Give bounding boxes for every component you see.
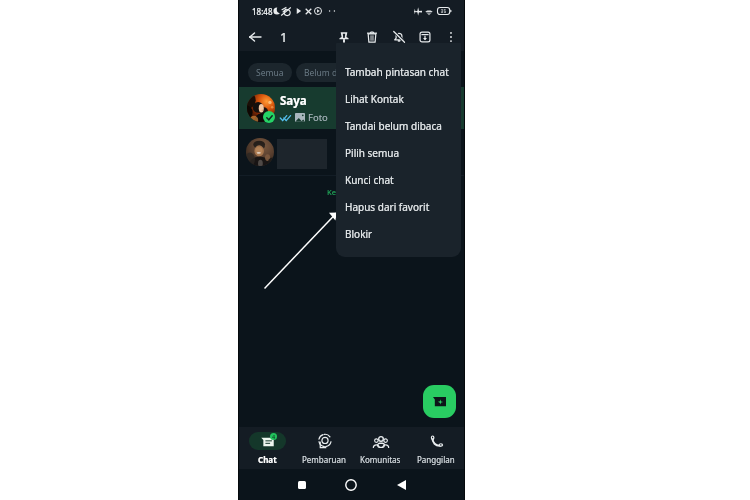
button[interactable]: Pembaruan [296, 427, 352, 469]
button[interactable]: More options [440, 26, 462, 48]
button[interactable]: New chat [423, 385, 456, 418]
button[interactable]: Pin [333, 26, 355, 48]
button[interactable]: Tandai belum dibaca [336, 112, 461, 139]
staticText: Saya [280, 93, 307, 109]
staticText: 1 [280, 28, 288, 46]
staticText: Foto [308, 111, 328, 124]
button[interactable]: Semua [248, 63, 292, 82]
button[interactable]: Archive [414, 26, 436, 48]
button[interactable]: Komunitas [352, 427, 408, 469]
button[interactable]: Blokir [336, 220, 461, 247]
button[interactable]: Kunci chat [336, 166, 461, 193]
button[interactable]: Saya [239, 87, 464, 129]
button[interactable]: Home [341, 475, 361, 495]
staticText: Kenali selengkapnya [327, 187, 401, 197]
button[interactable]: Back [244, 26, 266, 48]
staticText: Pilih semua [345, 146, 400, 160]
button[interactable]: Back [391, 475, 411, 495]
staticText: Lihat Kontak [345, 92, 404, 106]
button[interactable]: Pilih semua [336, 139, 461, 166]
button[interactable]: Hapus dari favorit [336, 193, 461, 220]
button[interactable]: Delete [361, 26, 383, 48]
button[interactable]: Mute notifications [388, 26, 410, 48]
staticText: Blokir [345, 227, 373, 241]
button[interactable]: Belum dibaca [296, 63, 367, 82]
staticText: 4 [272, 433, 276, 440]
button[interactable] [239, 129, 464, 175]
staticText: Pembaruan [302, 454, 346, 465]
staticText: Tambah pintasan chat [345, 65, 449, 79]
button[interactable]: Lihat Kontak [336, 85, 461, 112]
staticText: Tandai belum dibaca [345, 119, 442, 133]
button[interactable]: Panggilan [408, 427, 464, 469]
staticText: 18:48 [252, 6, 273, 17]
staticText: Panggilan [417, 454, 455, 465]
staticText: Semua [256, 67, 284, 79]
staticText: Hapus dari favorit [345, 200, 430, 214]
button[interactable]: Tambah pintasan chat [336, 58, 461, 85]
button[interactable]: 4 [239, 427, 296, 469]
staticText: Chat [258, 454, 277, 465]
staticText: Belum dibaca [304, 67, 359, 79]
staticText: Komunitas [360, 454, 401, 465]
staticText: Kunci chat [345, 173, 394, 187]
button[interactable]: Recents [292, 475, 312, 495]
